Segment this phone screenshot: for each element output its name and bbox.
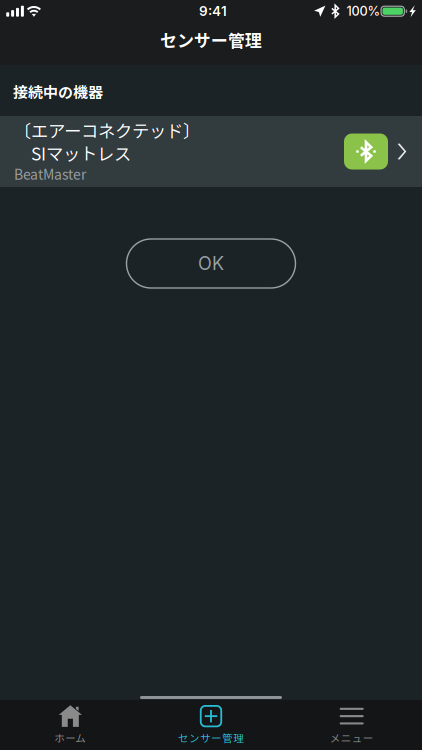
staticText: OK [198, 253, 224, 274]
staticText: センサー管理 [160, 27, 262, 52]
button[interactable]: メニュー [281, 699, 422, 750]
staticText: ホーム [54, 730, 86, 745]
button[interactable]: OK [126, 239, 295, 288]
staticText: 100% [347, 3, 381, 19]
button[interactable]: センサー管理 [141, 699, 281, 750]
staticText: メニュー [330, 730, 374, 745]
button[interactable]: ホーム [0, 699, 141, 750]
button[interactable]: 〔エアーコネクテッド〕 [0, 116, 422, 187]
staticText: センサー管理 [178, 730, 244, 745]
staticText: SIマットレス [14, 140, 131, 165]
staticText: BeatMaster [14, 163, 86, 184]
staticText: 接続中の機器 [13, 81, 103, 102]
staticText: 9:41 [199, 3, 227, 19]
staticText: 〔エアーコネクテッド〕 [14, 117, 200, 142]
